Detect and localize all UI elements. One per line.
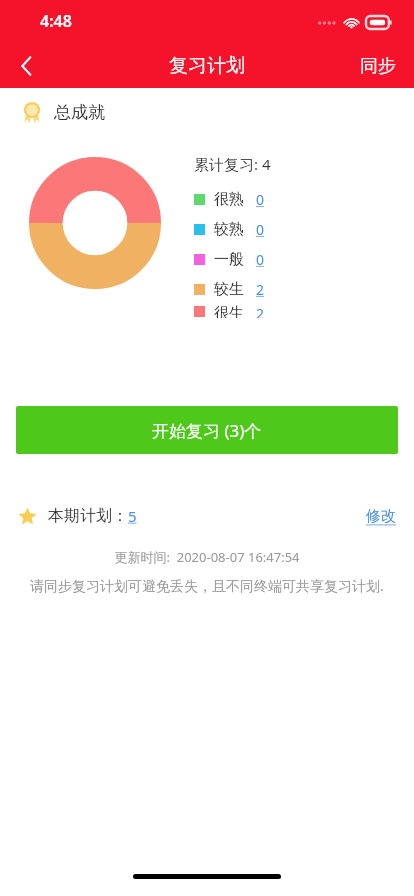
staticText: 0 [256, 190, 265, 209]
staticText: 2 [256, 304, 265, 318]
staticText: 修改 [366, 507, 396, 526]
button[interactable]: 同步 [342, 44, 414, 88]
staticText: 很熟 [214, 190, 244, 209]
staticText: 0 [256, 250, 265, 269]
button[interactable]: 较熟 [190, 214, 265, 244]
button[interactable]: 很熟 [190, 184, 265, 214]
staticText: 4:48 [40, 10, 72, 32]
staticText: 累计复习: 4 [194, 154, 271, 174]
staticText: 较生 [214, 280, 244, 299]
staticText: 一般 [214, 250, 244, 269]
staticText: 同步 [360, 55, 396, 78]
staticText: 更新时间: 2020-08-07 16:47:54 [0, 548, 414, 566]
button[interactable]: 很生 [190, 304, 265, 318]
staticText: 5 [128, 506, 137, 526]
button[interactable]: 本期计划： [48, 506, 137, 526]
staticText: 较熟 [214, 220, 244, 239]
staticText: 本期计划： [48, 506, 128, 526]
button[interactable]: 较生 [190, 274, 265, 304]
staticText: 总成就 [54, 102, 105, 123]
staticText: 2 [256, 280, 265, 299]
staticText: 请同步复习计划可避免丢失，且不同终端可共享复习计划. [0, 576, 414, 595]
staticText: 0 [256, 220, 265, 239]
button[interactable]: 修改 [366, 507, 396, 526]
staticText: 复习计划 [169, 54, 245, 78]
staticText: 开始复习 (3)个 [152, 419, 262, 442]
button[interactable]: Back [0, 44, 52, 88]
button[interactable]: 一般 [190, 244, 265, 274]
staticText: 很生 [214, 304, 244, 318]
button[interactable]: 开始复习 (3)个 [16, 406, 398, 454]
